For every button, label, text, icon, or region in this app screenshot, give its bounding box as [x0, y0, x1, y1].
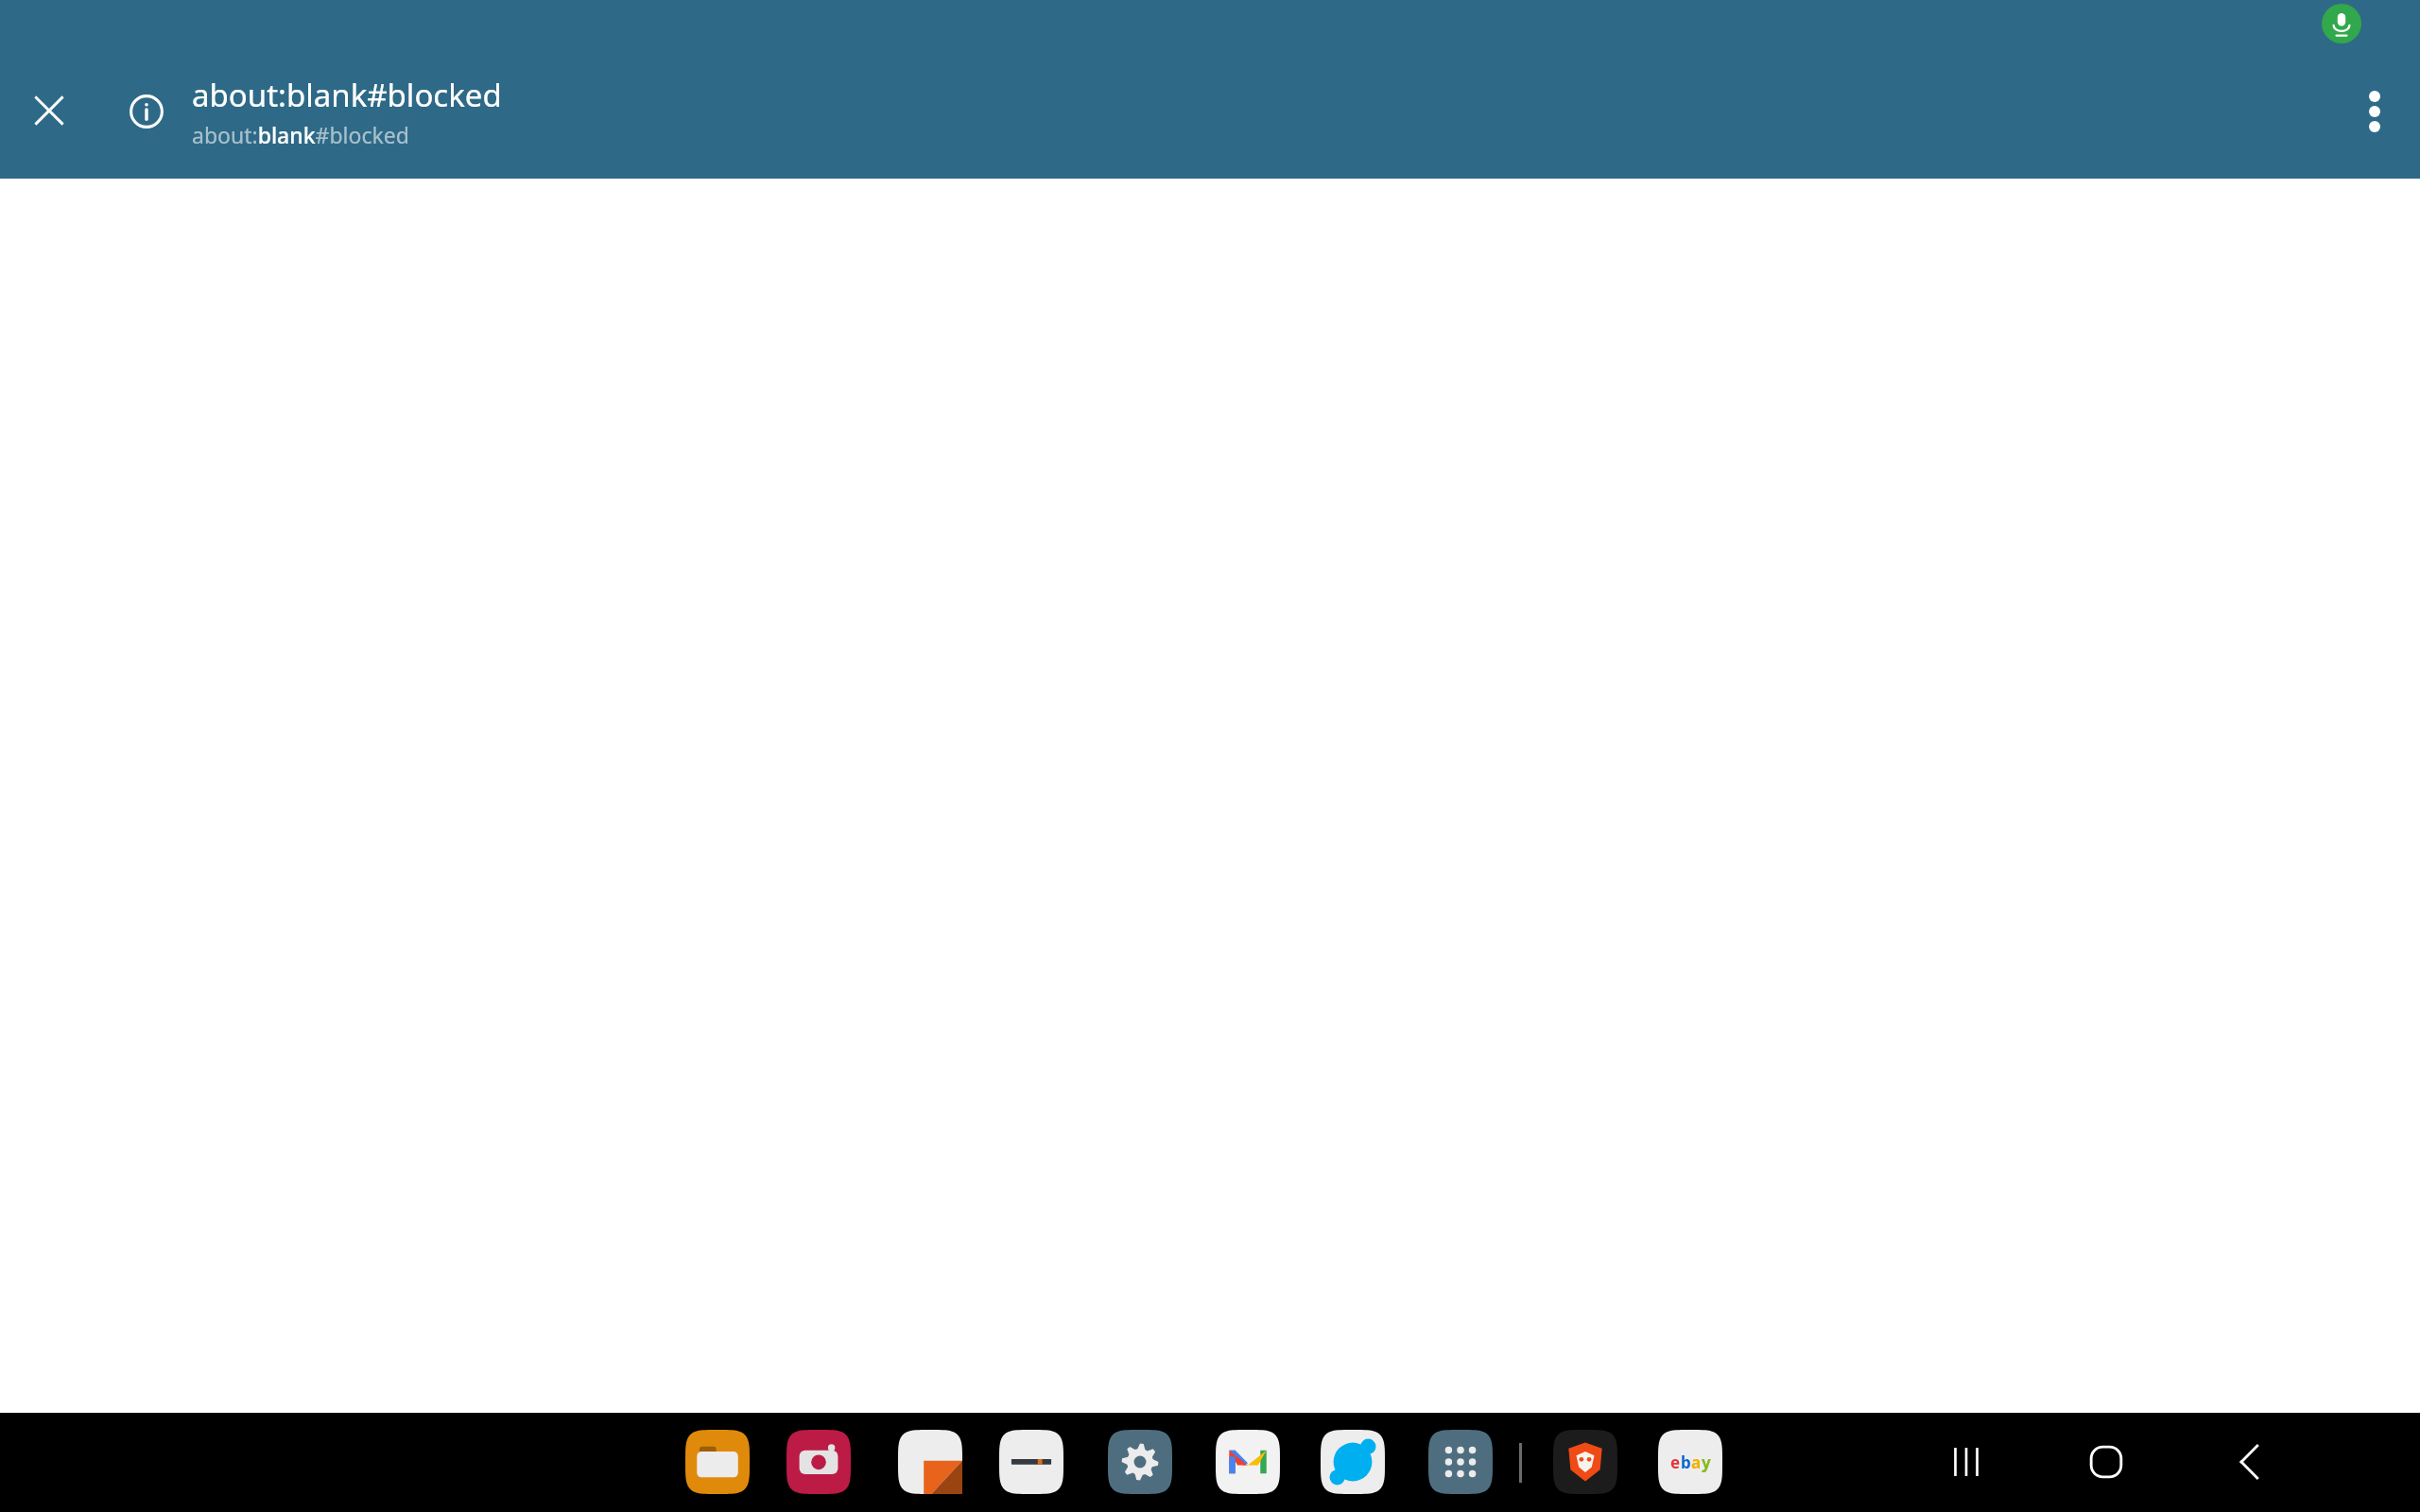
staticText: y	[1702, 1452, 1711, 1473]
button[interactable]: App	[999, 1430, 1063, 1494]
button[interactable]: Home	[2061, 1432, 2152, 1492]
button[interactable]: eBay	[1658, 1430, 1722, 1494]
button[interactable]: My Files	[685, 1430, 750, 1494]
button[interactable]: Camera	[786, 1430, 851, 1494]
button[interactable]: about:blank#blocked	[192, 74, 502, 149]
button[interactable]: Skype	[1321, 1430, 1385, 1494]
button[interactable]: Gmail	[1216, 1430, 1280, 1494]
button[interactable]: Recent apps	[1921, 1432, 2012, 1492]
button[interactable]: Settings	[1108, 1430, 1172, 1494]
staticText: a	[1691, 1452, 1702, 1473]
staticText: e	[1670, 1452, 1681, 1473]
button[interactable]: Notes	[898, 1430, 962, 1494]
staticText: about:blank#blocked	[192, 120, 409, 149]
button[interactable]: Voice search	[2322, 4, 2361, 43]
button[interactable]: More options	[2335, 72, 2414, 151]
button[interactable]: Brave	[1553, 1430, 1617, 1494]
button[interactable]: Back	[2204, 1432, 2295, 1492]
staticText: b	[1681, 1452, 1691, 1473]
button[interactable]: Apps	[1428, 1430, 1493, 1494]
button[interactable]: Page info	[107, 72, 186, 151]
staticText: about:blank#blocked	[192, 74, 502, 116]
button[interactable]: Close	[9, 71, 89, 150]
